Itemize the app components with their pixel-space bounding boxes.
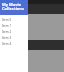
staticText: Item 2 <box>2 30 12 34</box>
button[interactable]: Item 0 <box>0 17 28 23</box>
staticText: Item 0 <box>2 18 12 22</box>
button[interactable]: Item 1 <box>0 23 28 29</box>
staticText: My Movie Collections <box>2 2 24 11</box>
button[interactable]: Item 3 <box>0 35 28 41</box>
staticText: Item 1 <box>2 24 12 28</box>
staticText: Item 3 <box>2 36 12 40</box>
staticText: Item 4 <box>2 42 12 46</box>
button[interactable]: Item 4 <box>0 41 28 47</box>
button[interactable]: Item 2 <box>0 29 28 35</box>
